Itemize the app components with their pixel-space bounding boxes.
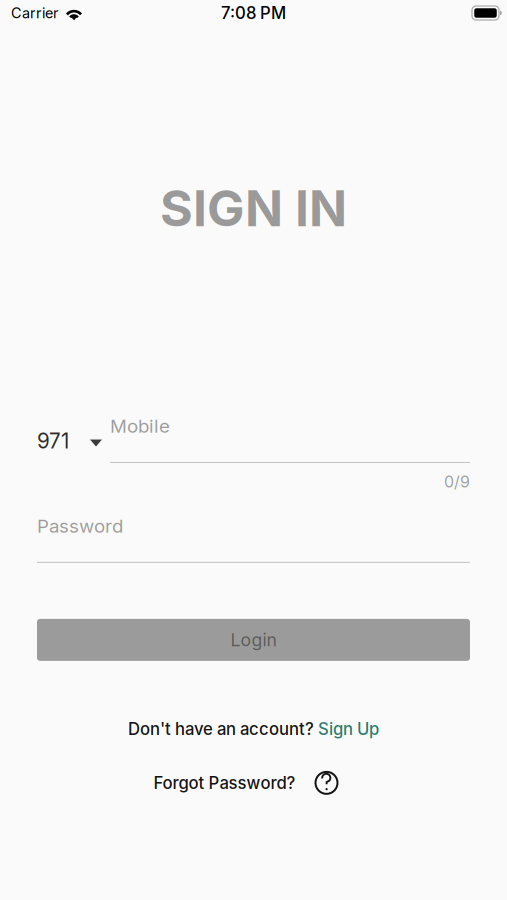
staticText: Password xyxy=(37,515,123,537)
staticText: SIGN IN xyxy=(160,178,347,238)
staticText: Login xyxy=(230,629,276,650)
staticText: 971 xyxy=(37,428,69,453)
button[interactable]: 971 xyxy=(37,416,102,452)
staticText: Mobile xyxy=(110,415,170,437)
staticText: Carrier xyxy=(11,4,58,22)
staticText: Sign Up xyxy=(318,719,379,739)
staticText: 0/9 xyxy=(444,472,470,491)
staticText: Forgot Password? xyxy=(153,773,295,793)
staticText: 7:08 PM xyxy=(221,3,286,23)
button[interactable]: Login xyxy=(37,619,470,661)
button[interactable]: Sign Up xyxy=(318,719,379,739)
button[interactable]: Forgot Password? xyxy=(153,770,353,796)
staticText: Don't have an account? xyxy=(128,719,318,739)
